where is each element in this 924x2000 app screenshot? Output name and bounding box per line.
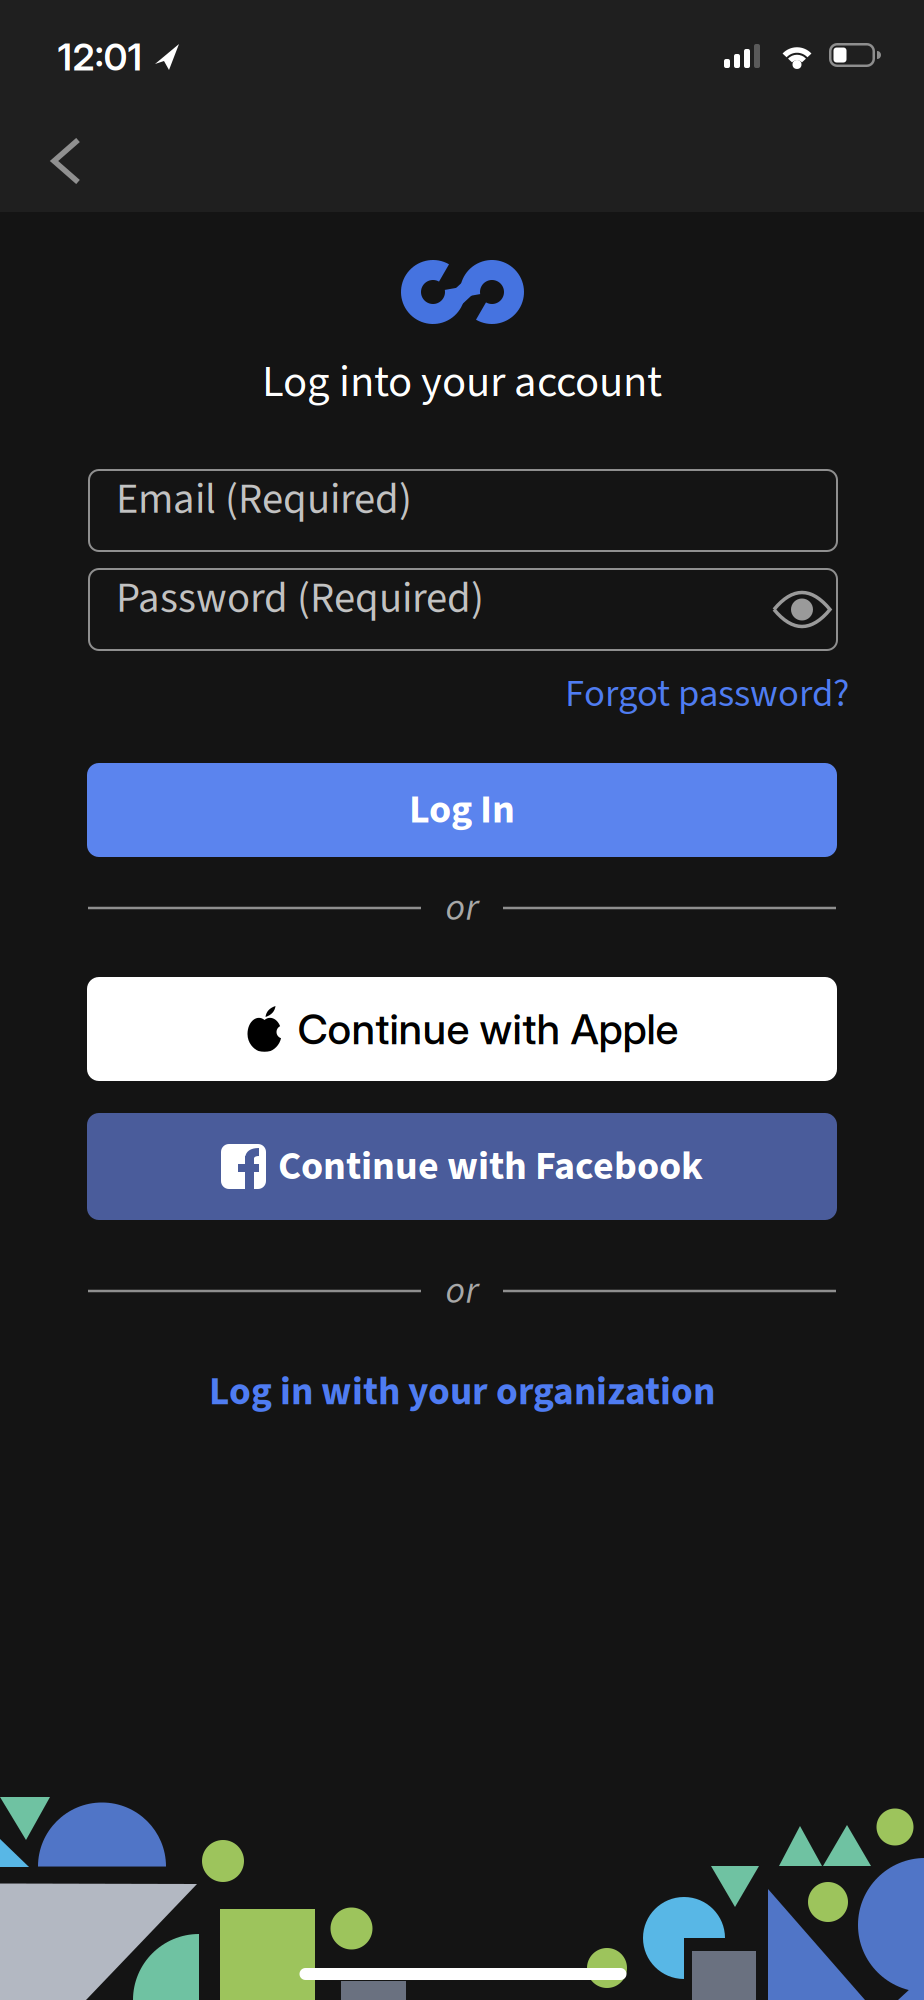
staticText: Log into your account	[262, 350, 662, 414]
staticText: Password (Required)	[116, 568, 484, 629]
button[interactable]: Log In	[87, 763, 837, 857]
staticText: or	[445, 881, 478, 935]
staticText: 12:01	[57, 34, 142, 80]
button[interactable]: Show password	[772, 583, 832, 635]
button[interactable]: Log in with your organization	[209, 1364, 715, 1420]
staticText: Continue with Apple	[297, 1004, 678, 1054]
staticText: Log In	[409, 781, 515, 838]
staticText: Log in with your organization	[209, 1364, 715, 1420]
button[interactable]: Back	[46, 136, 86, 188]
button[interactable]: Forgot password?	[565, 666, 849, 722]
staticText: Continue with Facebook	[278, 1138, 703, 1195]
staticText: or	[445, 1264, 478, 1318]
staticText: Forgot password?	[565, 666, 849, 722]
staticText: Email (Required)	[116, 469, 412, 530]
button[interactable]: Continue with Apple	[87, 977, 837, 1081]
button[interactable]: Continue with Facebook	[87, 1113, 837, 1220]
